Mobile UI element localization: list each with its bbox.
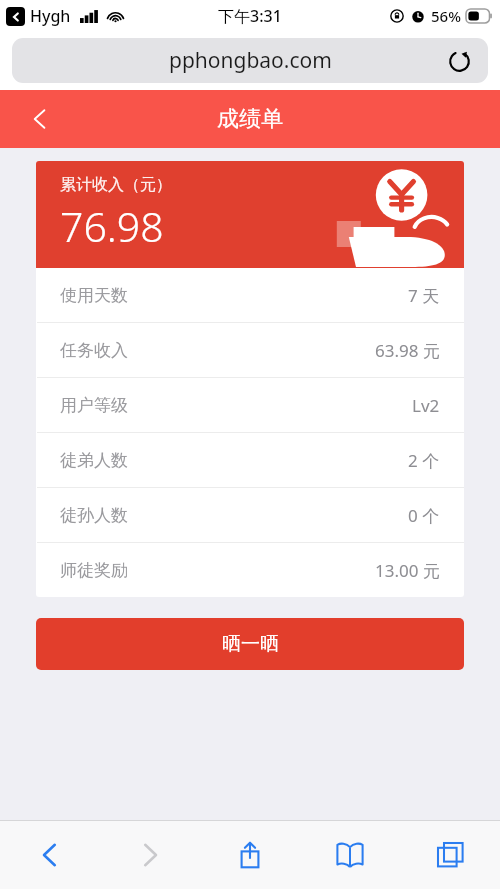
staticText: 徒孙人数 bbox=[60, 505, 128, 526]
button[interactable]: 徒弟人数 bbox=[36, 433, 464, 487]
staticText: 成绩单 bbox=[217, 105, 283, 133]
staticText: 76.98 bbox=[60, 198, 164, 254]
staticText: 下午3:31 bbox=[218, 5, 282, 27]
staticText: 师徒奖励 bbox=[60, 560, 128, 581]
staticText: Hygh bbox=[30, 5, 71, 27]
button[interactable]: Reload bbox=[444, 46, 474, 76]
staticText: 7 天 bbox=[408, 284, 440, 307]
button[interactable]: 晒一晒 bbox=[36, 618, 464, 670]
staticText: 0 个 bbox=[408, 504, 440, 527]
staticText: 晒一晒 bbox=[222, 632, 279, 656]
button[interactable]: 徒孙人数 bbox=[36, 488, 464, 542]
staticText: 徒弟人数 bbox=[60, 450, 128, 471]
staticText: 2 个 bbox=[408, 449, 440, 472]
button[interactable]: 使用天数 bbox=[36, 268, 464, 322]
button[interactable]: Tabs bbox=[400, 821, 500, 889]
staticText: pphongbao.com bbox=[169, 46, 332, 75]
staticText: 累计收入（元） bbox=[60, 175, 172, 195]
button[interactable]: Share bbox=[200, 821, 300, 889]
button[interactable]: 师徒奖励 bbox=[36, 543, 464, 597]
button[interactable]: Bookmarks bbox=[300, 821, 400, 889]
staticText: 56% bbox=[431, 6, 461, 26]
button[interactable]: 用户等级 bbox=[36, 378, 464, 432]
button[interactable]: Back bbox=[0, 821, 100, 889]
staticText: 任务收入 bbox=[60, 340, 128, 361]
staticText: 用户等级 bbox=[60, 395, 128, 416]
button[interactable]: pphongbao.com bbox=[12, 38, 488, 83]
other: Earnings bbox=[332, 165, 452, 265]
staticText: 13.00 元 bbox=[375, 559, 440, 582]
staticText: Lv2 bbox=[412, 394, 440, 417]
button[interactable]: Forward bbox=[100, 821, 200, 889]
button[interactable]: 任务收入 bbox=[36, 323, 464, 377]
staticText: 63.98 元 bbox=[375, 339, 440, 362]
button[interactable]: Back bbox=[18, 97, 62, 141]
staticText: 使用天数 bbox=[60, 285, 128, 306]
